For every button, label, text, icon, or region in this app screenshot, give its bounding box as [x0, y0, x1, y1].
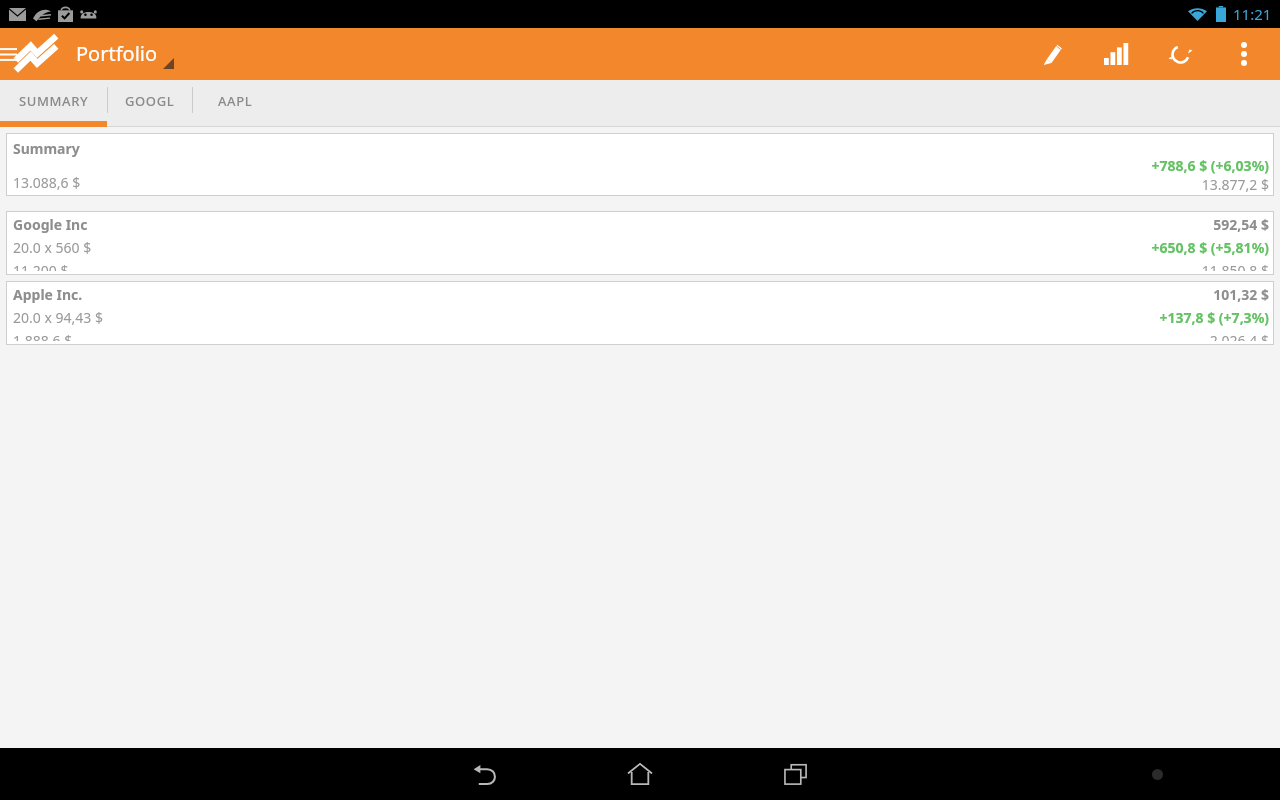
- staticText: 13.877,2 $: [1201, 175, 1269, 192]
- button[interactable]: AAPL: [193, 80, 277, 127]
- staticText: 1.888,6 $: [13, 331, 73, 341]
- staticText: 11:21: [1233, 4, 1272, 24]
- staticText: Apple Inc.: [13, 285, 83, 304]
- button[interactable]: Summary: [6, 133, 1274, 196]
- button[interactable]: More options: [1212, 28, 1276, 80]
- button[interactable]: Edit: [1020, 28, 1084, 80]
- button[interactable]: Navigation drawer: [0, 28, 22, 80]
- staticText: GOOGL: [125, 92, 175, 110]
- staticText: 20.0 x 560 $: [13, 238, 92, 257]
- staticText: 11.850,8 $: [1201, 261, 1269, 271]
- button[interactable]: Charts: [1084, 28, 1148, 80]
- staticText: 13.088,6 $: [13, 173, 81, 192]
- button[interactable]: SUMMARY: [0, 80, 107, 127]
- button[interactable]: App logo: [14, 32, 58, 76]
- button[interactable]: Refresh: [1148, 28, 1212, 80]
- button[interactable]: Back: [456, 748, 512, 800]
- staticText: +788,6 $ (+6,03%): [1151, 156, 1269, 175]
- button[interactable]: Home: [612, 748, 668, 800]
- staticText: Google Inc: [13, 215, 88, 234]
- button[interactable]: GOOGL: [108, 80, 192, 127]
- staticText: SUMMARY: [19, 92, 89, 110]
- staticText: Portfolio: [76, 40, 158, 67]
- staticText: +650,8 $ (+5,81%): [1151, 238, 1269, 257]
- button[interactable]: Recent apps: [768, 748, 824, 800]
- staticText: Summary: [13, 139, 80, 158]
- staticText: 101,32 $: [1213, 285, 1269, 304]
- button[interactable]: Apple Inc.: [6, 281, 1274, 345]
- staticText: 20.0 x 94,43 $: [13, 308, 103, 327]
- staticText: 11.200 $: [13, 261, 69, 271]
- staticText: 2.026,4 $: [1209, 331, 1269, 341]
- button[interactable]: Google Inc: [6, 211, 1274, 275]
- staticText: +137,8 $ (+7,3%): [1159, 308, 1269, 327]
- staticText: 592,54 $: [1213, 215, 1269, 234]
- staticText: AAPL: [218, 92, 253, 110]
